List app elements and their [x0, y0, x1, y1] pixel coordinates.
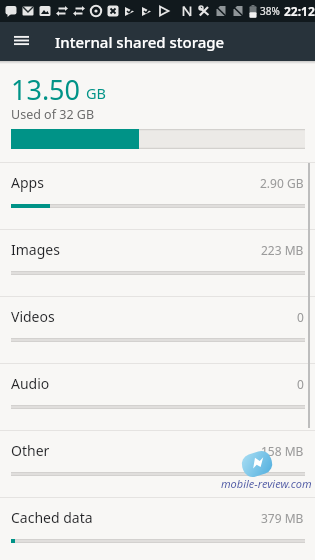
- button[interactable]: Videos: [0, 297, 315, 363]
- button[interactable]: Apps: [0, 163, 315, 229]
- staticText: 13.50: [11, 71, 81, 108]
- staticText: 0: [297, 376, 304, 392]
- staticText: mobile-review.com: [221, 476, 312, 491]
- button[interactable]: [0, 22, 55, 61]
- staticText: 158 MB: [261, 443, 304, 459]
- staticText: Images: [11, 240, 60, 259]
- staticText: Apps: [11, 173, 44, 192]
- button[interactable]: Other: [0, 431, 315, 497]
- button[interactable]: Images: [0, 230, 315, 296]
- staticText: 2.90 GB: [260, 175, 304, 191]
- staticText: Used of 32 GB: [11, 106, 95, 123]
- staticText: GB: [86, 83, 106, 103]
- staticText: 38%: [260, 4, 280, 18]
- staticText: Internal shared storage: [55, 32, 225, 52]
- staticText: 223 MB: [261, 242, 304, 258]
- staticText: 0: [297, 309, 304, 325]
- staticText: Other: [11, 441, 50, 460]
- button[interactable]: Cached data: [0, 498, 315, 560]
- staticText: Cached data: [11, 508, 93, 527]
- button[interactable]: Audio: [0, 364, 315, 430]
- staticText: 379 MB: [261, 510, 304, 526]
- staticText: Videos: [11, 307, 55, 326]
- staticText: Audio: [11, 374, 50, 393]
- staticText: 22:12: [284, 3, 315, 19]
